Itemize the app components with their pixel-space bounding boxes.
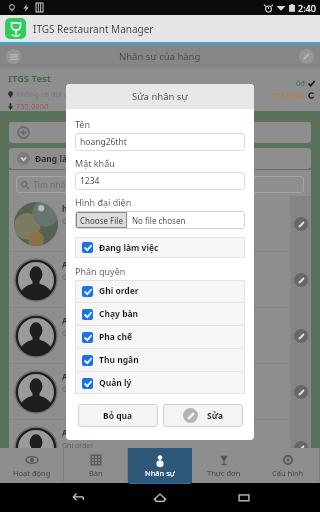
staticText: Nhân sự — [145, 468, 175, 478]
staticText: Admin — [62, 259, 88, 270]
staticText: Ghi order — [62, 329, 94, 339]
staticText: 0đ — [296, 78, 305, 88]
staticText: ITGS Restaurant Manager — [33, 22, 154, 36]
button[interactable]: Sửa — [163, 404, 243, 427]
staticText: Cấu hình — [272, 468, 304, 478]
other: Back — [70, 491, 84, 505]
button[interactable]: Bỏ qua — [78, 404, 158, 427]
staticText: Hình đại diện — [75, 196, 132, 208]
staticText: Thực đơn — [207, 468, 241, 478]
button[interactable]: Ghi order — [82, 280, 245, 302]
staticText: Thu ngân — [99, 354, 139, 366]
staticText: Sửa nhân sự — [132, 90, 188, 103]
button[interactable]: Quản lý — [82, 372, 245, 394]
staticText: Tìm nhân sự — [33, 179, 83, 191]
staticText: No file chosen — [132, 215, 186, 226]
staticText: Ghi order — [62, 441, 94, 451]
staticText: Nhân sự của hàng — [119, 50, 201, 63]
staticText: Không có địa chỉ — [16, 89, 74, 99]
staticText: 1234 — [80, 175, 100, 187]
staticText: Hoạt động — [13, 468, 51, 478]
other: Home — [153, 491, 167, 505]
staticText: Choose File — [80, 215, 123, 226]
staticText: Admin — [62, 315, 88, 326]
staticText: ITGS Test — [8, 72, 51, 85]
button[interactable]: hoang26tht — [9, 196, 311, 251]
button[interactable]: Chạy bàn — [82, 303, 245, 325]
staticText: 755,000đ — [272, 90, 305, 100]
staticText: hoang26tht — [62, 203, 109, 214]
staticText: Quản lý — [99, 377, 132, 389]
button[interactable]: Edit — [299, 49, 314, 64]
staticText: Bỏ qua — [103, 410, 133, 422]
button[interactable]: Admin — [9, 308, 311, 363]
staticText: Đang làm việc — [99, 242, 159, 254]
staticText: Sửa — [207, 410, 224, 422]
staticText: Phân quyền — [75, 265, 126, 277]
button[interactable]: Thực đơn — [192, 448, 256, 483]
button[interactable]: Choose File — [75, 211, 245, 229]
other: Recents — [237, 491, 251, 505]
staticText: Tên — [75, 118, 91, 130]
staticText: Pha chế — [99, 331, 133, 343]
staticText: Mật khẩu — [75, 157, 115, 169]
button[interactable]: Cấu hình — [256, 448, 320, 483]
button[interactable]: Menu — [6, 49, 21, 64]
staticText: Bàn — [89, 468, 103, 478]
button[interactable]: Thu ngân — [82, 349, 245, 371]
button[interactable]: Đang làm việc — [9, 148, 311, 169]
button[interactable]: Add — [9, 122, 311, 143]
button[interactable]: Edit — [294, 329, 308, 343]
staticText: hoang26tht — [80, 136, 127, 148]
button[interactable]: Admin — [9, 420, 311, 475]
button[interactable]: Edit — [294, 273, 308, 287]
staticText: 755,000đ — [16, 101, 49, 111]
button[interactable]: Edit — [294, 385, 308, 399]
button[interactable]: Pha chế — [82, 326, 245, 348]
button[interactable]: Bàn — [64, 448, 128, 483]
staticText: Đang làm việc — [35, 153, 95, 165]
button[interactable]: Nhân sự — [128, 448, 192, 483]
staticText: Chạy bàn — [99, 308, 139, 320]
staticText: Admin — [62, 427, 88, 438]
staticText: 2:40 — [298, 2, 316, 14]
staticText: Ghi order — [99, 285, 139, 297]
button[interactable]: Admin — [9, 364, 311, 419]
button[interactable]: Edit — [294, 441, 308, 455]
staticText: Ghi order — [62, 273, 94, 283]
button[interactable]: Đang làm việc — [82, 237, 245, 258]
button[interactable]: Hoạt động — [0, 448, 64, 483]
button[interactable]: Edit — [294, 217, 308, 231]
staticText: Admin — [62, 371, 88, 382]
staticText: Ghi order — [62, 217, 94, 227]
button[interactable]: Tìm nhân sự — [16, 176, 304, 193]
button[interactable]: Admin — [9, 252, 311, 307]
staticText: Ghi order — [62, 385, 94, 395]
